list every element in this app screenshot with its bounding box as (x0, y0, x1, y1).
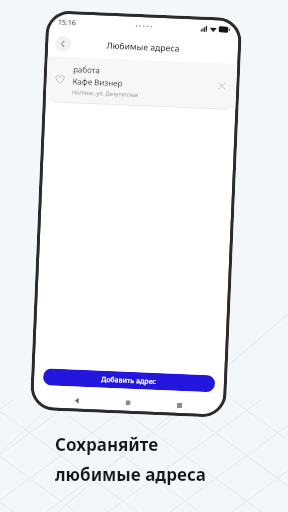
button[interactable]: Недавние (172, 398, 186, 412)
staticText: работа (73, 63, 100, 75)
button[interactable]: Домой (121, 395, 135, 410)
button[interactable]: Удалить (214, 78, 229, 93)
staticText: любимые адреса (55, 463, 206, 486)
staticText: 15:16 (58, 18, 76, 28)
staticText: Сохраняйте (55, 433, 159, 456)
other: Избранное (54, 73, 66, 85)
staticText: Ногликс, ул. Депутатская (72, 88, 139, 98)
button[interactable]: Добавить адрес (43, 368, 215, 392)
staticText: Кафе Визнер (72, 75, 124, 88)
button[interactable]: Избранное (46, 56, 237, 109)
staticText: Любимые адреса (106, 40, 180, 55)
button[interactable]: Назад (55, 35, 71, 52)
button[interactable]: Назад (70, 393, 84, 408)
staticText: Добавить адрес (101, 375, 157, 387)
